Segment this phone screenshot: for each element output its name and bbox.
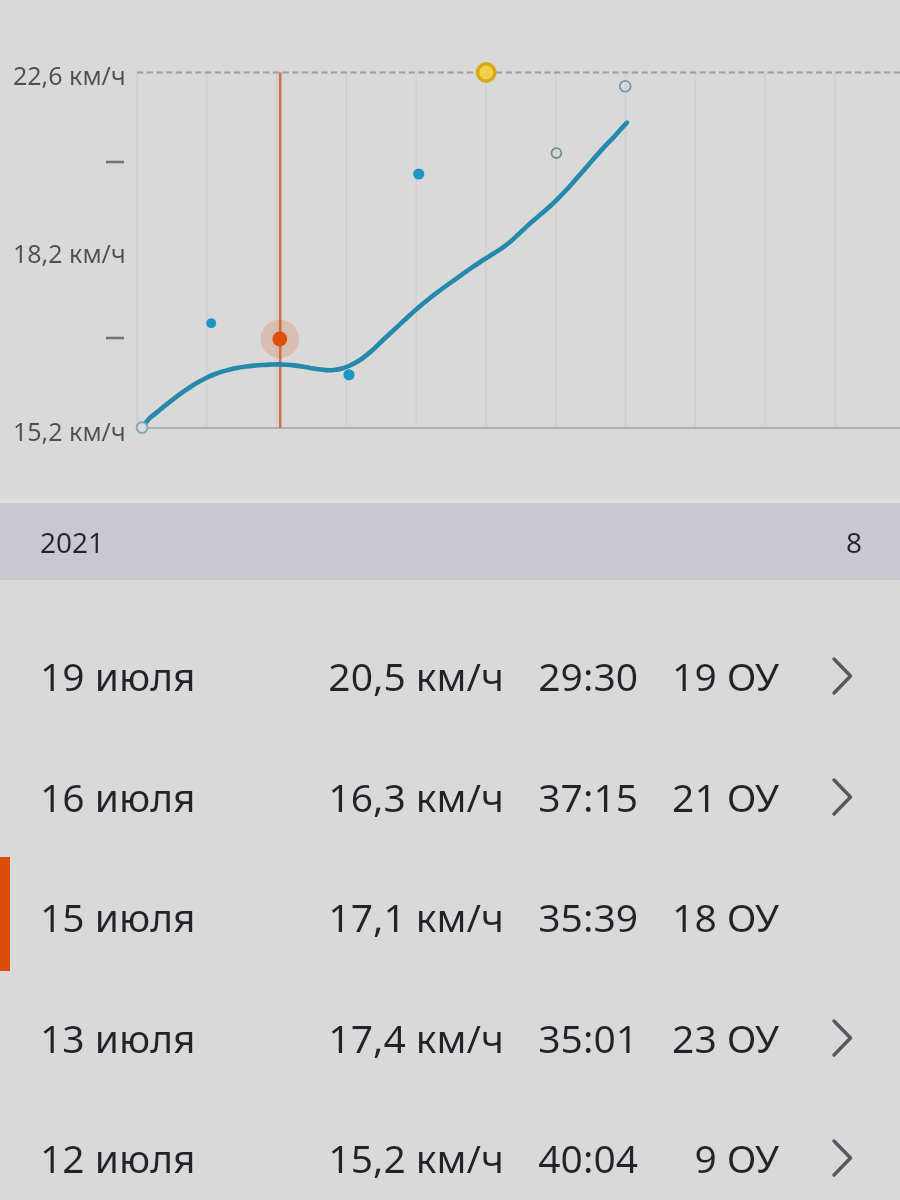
button[interactable]: Open workout details [823,654,867,698]
staticText: 19 июля [40,649,196,702]
staticText: 21 ОУ [672,770,779,823]
button[interactable]: 19 июля [0,615,900,736]
staticText: 15,2 км/ч [328,1131,504,1184]
staticText: 16,3 км/ч [328,770,504,823]
staticText: 37:15 [538,770,638,823]
button[interactable]: 12 июля [0,1097,900,1200]
staticText: 19 ОУ [672,649,779,702]
staticText: 17,4 км/ч [328,1011,504,1064]
staticText: 12 июля [40,1131,196,1184]
staticText: 16 июля [40,770,196,823]
staticText: 15 июля [40,890,196,943]
staticText: 22,6 км/ч [13,58,126,92]
staticText: 18,2 км/ч [13,236,126,270]
staticText: 17,1 км/ч [328,890,504,943]
staticText: 23 ОУ [672,1011,779,1064]
button[interactable]: 15 июля [0,856,900,977]
staticText: 40:04 [538,1131,638,1184]
staticText: 8 [846,523,863,561]
button[interactable]: Open workout details [823,1016,867,1060]
button[interactable]: 13 июля [0,977,900,1098]
button[interactable]: Open workout details [823,1136,867,1180]
staticText: 13 июля [40,1011,196,1064]
staticText: 2021 [40,523,105,561]
staticText: 35:39 [538,890,638,943]
staticText: 20,5 км/ч [328,649,504,702]
staticText: 9 ОУ [694,1131,779,1184]
button[interactable]: Open workout details [823,775,867,819]
button[interactable]: 16 июля [0,736,900,857]
staticText: 29:30 [538,649,638,702]
staticText: 35:01 [538,1011,638,1064]
staticText: 18 ОУ [672,890,779,943]
button[interactable]: 2021 [0,503,900,580]
staticText: 15,2 км/ч [13,414,126,448]
